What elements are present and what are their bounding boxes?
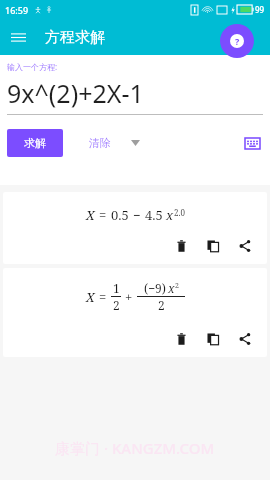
staticText: 4.5 bbox=[145, 206, 163, 224]
staticText: − bbox=[133, 206, 141, 224]
staticText: 2 bbox=[113, 297, 120, 313]
button[interactable]: Show more options bbox=[126, 134, 144, 152]
staticText: + bbox=[125, 288, 133, 306]
button[interactable]: Copy bbox=[201, 234, 225, 258]
staticText: x bbox=[166, 206, 174, 224]
staticText: 1 bbox=[113, 280, 120, 296]
button[interactable]: 清除 bbox=[83, 129, 117, 157]
staticText: 输入一个方程: bbox=[7, 61, 58, 72]
button[interactable]: Help bbox=[220, 24, 254, 58]
button[interactable]: Share bbox=[233, 234, 257, 258]
staticText: 9x^(2)+2X-1 bbox=[7, 76, 144, 110]
button[interactable]: Open navigation menu bbox=[0, 19, 36, 55]
button[interactable]: Show keyboard bbox=[241, 132, 263, 154]
staticText: 99 bbox=[255, 4, 265, 15]
button[interactable]: Share bbox=[233, 327, 257, 351]
button[interactable]: Delete bbox=[169, 234, 193, 258]
staticText: = bbox=[99, 206, 107, 224]
staticText: 清除 bbox=[89, 136, 111, 150]
staticText: 2 bbox=[175, 281, 179, 291]
staticText: ? bbox=[235, 35, 240, 47]
staticText: 2.0 bbox=[174, 207, 185, 218]
staticText: 方程求解 bbox=[45, 28, 105, 47]
staticText: 0.5 bbox=[111, 206, 129, 224]
button[interactable]: 求解 bbox=[7, 129, 63, 157]
button[interactable]: Copy bbox=[201, 327, 225, 351]
staticText: = bbox=[99, 288, 107, 306]
button[interactable]: Delete bbox=[169, 327, 193, 351]
staticText: (−9) bbox=[144, 280, 166, 296]
staticText: 康掌门 · KANGZM.COM bbox=[55, 438, 215, 458]
staticText: X bbox=[86, 288, 95, 306]
staticText: x bbox=[168, 280, 175, 296]
staticText: 2 bbox=[158, 297, 165, 313]
staticText: X bbox=[86, 206, 95, 224]
staticText: 16:59 bbox=[5, 4, 29, 16]
staticText: 求解 bbox=[24, 136, 46, 150]
